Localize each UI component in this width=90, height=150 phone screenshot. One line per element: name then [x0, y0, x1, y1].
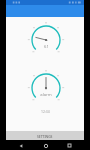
button[interactable]: Back	[16, 141, 25, 150]
staticText: 61	[44, 44, 49, 50]
button[interactable]: Recent apps	[65, 141, 74, 150]
button[interactable]: Home	[41, 141, 50, 150]
staticText: 12:34	[41, 109, 50, 114]
staticText: alarm	[40, 92, 52, 98]
staticText: SETTINGS	[37, 134, 53, 138]
button[interactable]: SETTINGS	[6, 131, 84, 140]
